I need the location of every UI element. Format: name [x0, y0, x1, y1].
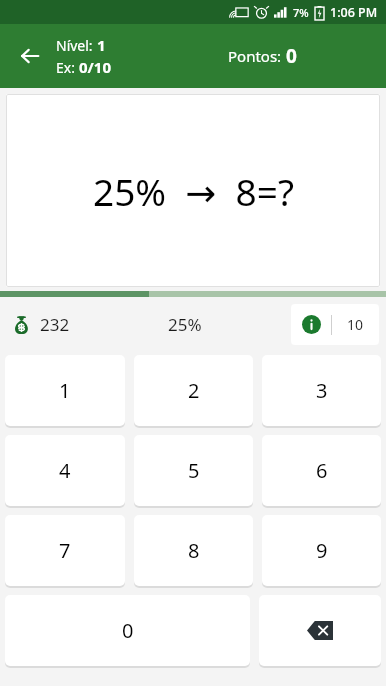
button[interactable]: 6 — [262, 435, 381, 506]
staticText: 1:06 PM — [330, 4, 378, 21]
staticText: 1 — [97, 35, 106, 55]
staticText: 25% — [168, 313, 202, 336]
staticText: 9 — [316, 537, 328, 564]
staticText: 232 — [40, 313, 70, 336]
button[interactable]: Back — [8, 34, 52, 78]
button[interactable]: 7 — [5, 515, 125, 586]
staticText: Ex: — [56, 58, 79, 77]
button[interactable]: 5 — [134, 435, 253, 506]
staticText: 0 — [286, 43, 297, 69]
button[interactable]: 3 — [262, 355, 381, 426]
staticText: 5 — [188, 457, 200, 484]
staticText: 7 — [59, 537, 71, 564]
other: Backspace — [259, 595, 381, 666]
button[interactable]: 0 — [5, 595, 250, 666]
staticText: 1 — [59, 377, 71, 404]
staticText: 3 — [316, 377, 328, 404]
staticText: 0 — [122, 617, 134, 644]
button[interactable] — [259, 595, 381, 666]
staticText: 4 — [59, 457, 71, 484]
staticText: 8 — [188, 537, 200, 564]
staticText: 7% — [293, 5, 309, 20]
staticText: 2 — [188, 377, 200, 404]
staticText: 25% → 8=? — [93, 166, 294, 216]
button[interactable]: 1 — [5, 355, 125, 426]
staticText: Pontos: — [228, 46, 286, 66]
staticText: 0/10 — [79, 57, 111, 77]
button[interactable]: 8 — [134, 515, 253, 586]
button[interactable]: 4 — [5, 435, 125, 506]
staticText: Nível: — [56, 36, 97, 55]
button[interactable]: 9 — [262, 515, 381, 586]
button[interactable]: 2 — [134, 355, 253, 426]
staticText: 10 — [347, 315, 364, 334]
staticText: 6 — [316, 457, 328, 484]
button[interactable]: 10 — [291, 304, 379, 345]
